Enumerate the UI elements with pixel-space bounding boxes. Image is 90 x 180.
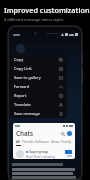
button[interactable]: Save message (9, 109, 67, 118)
staticText: Friends (22, 139, 34, 144)
other: copy (59, 58, 63, 62)
other: translate (59, 103, 63, 107)
staticText: Copy (14, 57, 24, 62)
button[interactable]: Copy (9, 55, 67, 64)
staticText: News (51, 139, 60, 144)
button[interactable]: Report (9, 91, 67, 100)
staticText: 4 different message menu styles (4, 17, 64, 22)
button[interactable]: Search (60, 131, 65, 136)
button[interactable]: All (16, 139, 21, 144)
staticText: Chats (16, 129, 34, 137)
other: forward (59, 85, 63, 89)
staticText: Translate (14, 102, 31, 107)
button[interactable]: Copy Link (9, 64, 67, 73)
button[interactable]: Family (61, 139, 72, 144)
button[interactable]: Translate (9, 100, 67, 109)
button[interactable]: Forward (9, 82, 67, 91)
button[interactable]: Supergroup (13, 148, 75, 159)
button[interactable]: Software (35, 139, 50, 144)
staticText: Family (61, 139, 72, 144)
staticText: Improved customization (4, 5, 90, 15)
other: report (59, 94, 63, 98)
other: link (59, 67, 63, 71)
staticText: Nice! That's amazing (26, 155, 55, 159)
staticText: Report (14, 93, 27, 98)
other: save (59, 112, 63, 116)
staticText: Forward (14, 84, 30, 89)
staticText: All (16, 139, 21, 144)
staticText: Software (35, 139, 50, 144)
staticText: Save message (14, 111, 40, 116)
button[interactable]: Profile (67, 131, 72, 136)
button[interactable]: Save to gallery (9, 73, 67, 82)
button[interactable]: Friends (22, 139, 34, 144)
other: gallery (59, 76, 63, 80)
staticText: Supergroup (29, 149, 49, 154)
button[interactable]: News (51, 139, 60, 144)
staticText: Copy Link (14, 66, 32, 71)
staticText: Save to gallery (14, 75, 41, 80)
